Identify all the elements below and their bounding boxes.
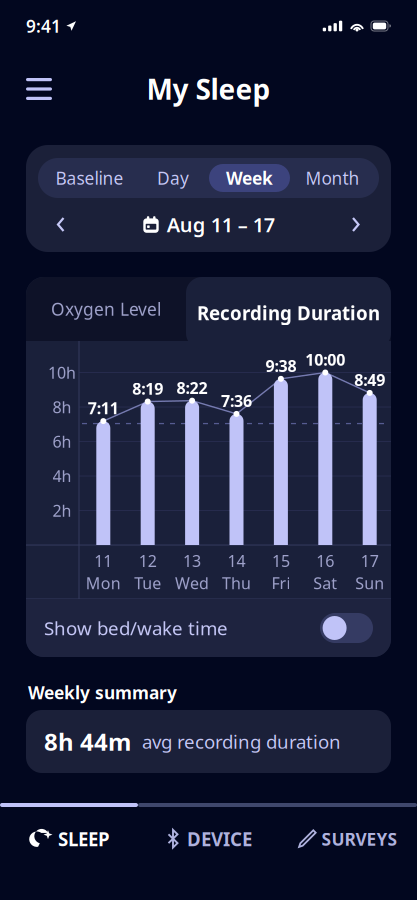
staticText: Month [305, 166, 359, 189]
button[interactable]: Recording Duration [186, 277, 391, 341]
staticText: 6h [52, 431, 71, 452]
staticText: 9:41 [26, 14, 61, 37]
staticText: 12 [139, 550, 157, 571]
staticText: Mon [86, 572, 121, 594]
staticText: My Sleep [146, 70, 270, 108]
staticText: 9:38 [265, 355, 296, 376]
button[interactable]: Next week [339, 207, 373, 241]
button[interactable]: SLEEP [0, 807, 139, 871]
button[interactable]: Day [137, 164, 209, 192]
staticText: 16 [316, 550, 334, 571]
button[interactable]: Month [290, 164, 375, 192]
staticText: 8:19 [132, 378, 163, 399]
staticText: 10h [48, 362, 76, 383]
staticText: Day [157, 166, 189, 189]
staticText: 14 [227, 550, 245, 571]
staticText: 17 [361, 550, 379, 571]
staticText: Show bed/wake time [44, 616, 228, 640]
staticText: Oxygen Level [51, 297, 161, 320]
staticText: 15 [272, 550, 290, 571]
staticText: Weekly summary [28, 681, 177, 704]
staticText: Aug 11 – 17 [167, 211, 275, 238]
staticText: 11 [94, 550, 112, 571]
staticText: 13 [183, 550, 201, 571]
staticText: Wed [175, 572, 209, 594]
button[interactable]: Baseline [42, 164, 137, 192]
staticText: 4h [52, 465, 71, 487]
staticText: Tue [134, 572, 161, 594]
button[interactable]: Previous week [44, 207, 78, 241]
staticText: 8:22 [177, 377, 208, 398]
staticText: Week [226, 166, 273, 189]
staticText: Sat [313, 572, 337, 594]
button[interactable]: Aug 11 – 17 [142, 207, 275, 241]
button[interactable]: Week [209, 164, 290, 192]
button[interactable]: Oxygen Level [26, 277, 186, 341]
staticText: Baseline [55, 166, 123, 189]
staticText: 8h [52, 396, 71, 418]
button[interactable]: SURVEYS [278, 807, 417, 871]
staticText: 7:36 [221, 390, 252, 411]
button[interactable]: Show bed/wake time [320, 613, 373, 643]
staticText: avg recording duration [142, 729, 341, 754]
staticText: Sun [355, 572, 384, 594]
staticText: 2h [52, 500, 71, 521]
staticText: Fri [271, 572, 290, 594]
staticText: DEVICE [187, 827, 252, 851]
staticText: Recording Duration [197, 301, 380, 325]
staticText: 10:00 [305, 349, 345, 370]
staticText: SURVEYS [321, 827, 397, 850]
button[interactable]: DEVICE [139, 807, 278, 871]
button[interactable]: Menu [21, 71, 57, 107]
staticText: 8h 44m [44, 726, 131, 757]
staticText: 8:49 [354, 369, 385, 390]
staticText: Thu [222, 572, 251, 594]
staticText: SLEEP [58, 827, 110, 851]
staticText: 7:11 [88, 397, 119, 419]
